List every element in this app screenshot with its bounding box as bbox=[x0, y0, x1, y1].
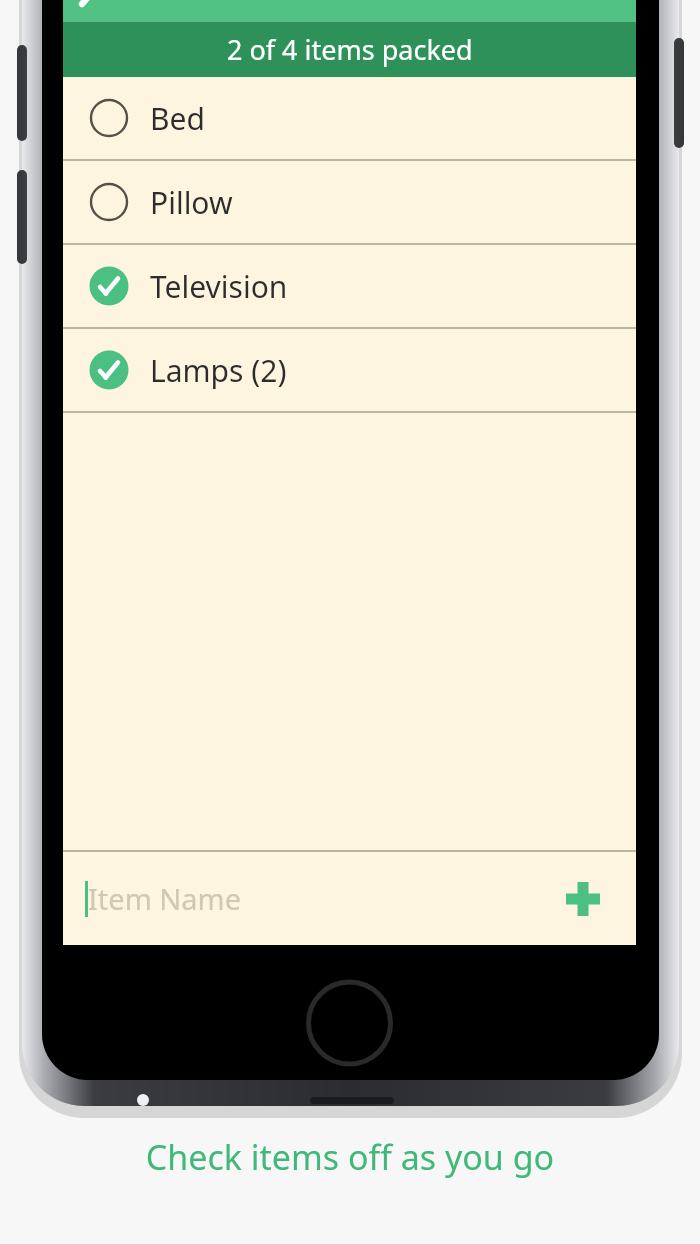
staticText: Bed bbox=[150, 98, 205, 139]
button[interactable]: Bed bbox=[63, 77, 636, 159]
button[interactable]: Television bbox=[63, 245, 636, 327]
button[interactable]: Lamps (2) bbox=[63, 329, 636, 411]
staticText: Item Name bbox=[88, 879, 242, 918]
staticText: Pillow bbox=[150, 182, 233, 223]
button[interactable]: Back to Rooms bbox=[75, 0, 145, 22]
staticText: Check items off as you go bbox=[0, 1134, 700, 1180]
button[interactable]: Add item bbox=[546, 862, 620, 936]
button[interactable]: Pillow bbox=[63, 161, 636, 243]
staticText: Television bbox=[150, 266, 288, 307]
staticText: 2 of 4 items packed bbox=[227, 31, 473, 68]
button[interactable]: Item Name bbox=[63, 852, 636, 945]
staticText: Lamps (2) bbox=[150, 350, 287, 391]
